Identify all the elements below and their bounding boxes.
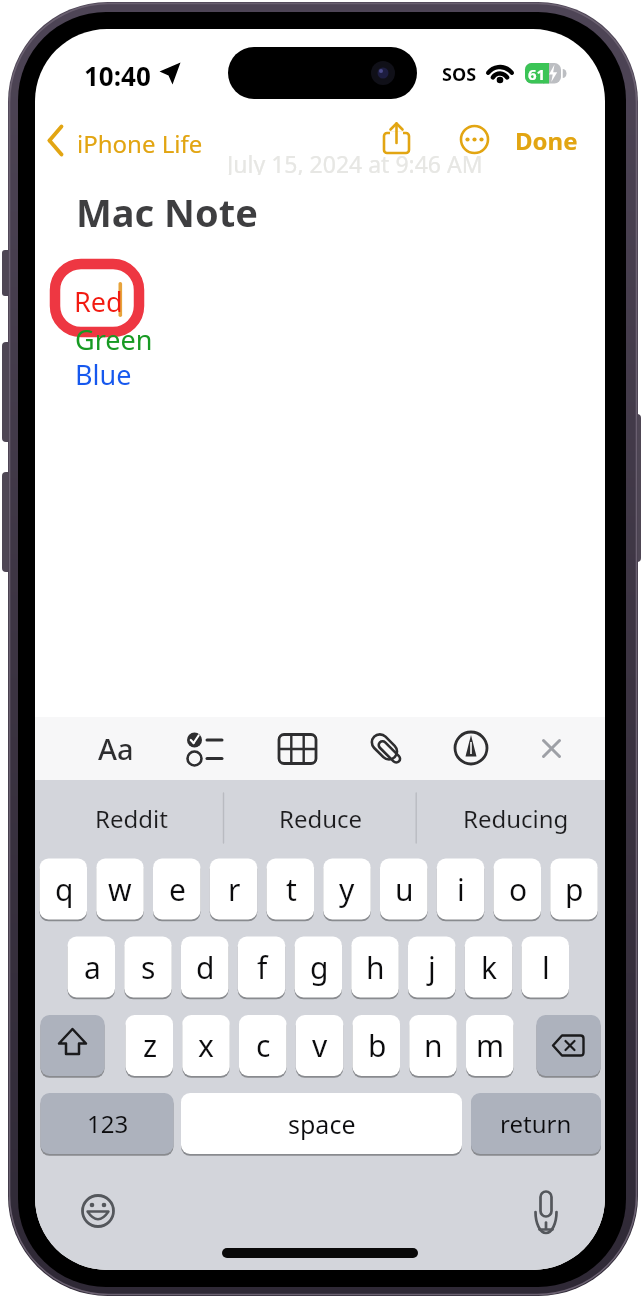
staticText: Aa [98, 729, 134, 768]
staticText: i [457, 869, 465, 910]
button[interactable]: o [494, 859, 542, 920]
staticText: r [228, 869, 241, 910]
staticText: d [196, 947, 215, 988]
staticText: y [339, 869, 355, 910]
staticText: l [542, 947, 550, 988]
staticText: Reduce [279, 802, 363, 835]
button[interactable]: Reddit [60, 795, 202, 841]
button[interactable] [452, 117, 497, 162]
staticText: Green [75, 321, 153, 358]
staticText: p [565, 869, 584, 910]
button[interactable] [530, 726, 573, 771]
button[interactable] [362, 726, 409, 771]
staticText: 10:40 [84, 58, 151, 89]
button[interactable] [448, 726, 494, 771]
staticText: x [198, 1025, 214, 1066]
button[interactable] [172, 726, 222, 771]
button[interactable]: Done [508, 120, 584, 160]
button[interactable]: Aa [88, 728, 144, 768]
staticText: Done [515, 124, 578, 157]
staticText: v [312, 1025, 328, 1066]
staticText: m [476, 1025, 505, 1066]
button[interactable] [526, 1191, 566, 1231]
button[interactable]: space [181, 1093, 462, 1154]
button[interactable]: t [267, 859, 315, 920]
button[interactable]: u [380, 859, 428, 920]
button[interactable]: g [295, 937, 343, 998]
staticText: w [108, 869, 132, 910]
button[interactable]: Reduce [250, 795, 392, 841]
button[interactable]: m [466, 1015, 514, 1076]
button[interactable]: s [124, 937, 172, 998]
staticText: k [481, 947, 498, 988]
staticText: Reddit [95, 802, 168, 835]
staticText: j [428, 947, 436, 988]
staticText: o [509, 869, 528, 910]
staticText: iPhone Life [77, 127, 203, 160]
button[interactable]: q [40, 859, 88, 920]
button[interactable] [374, 116, 419, 161]
staticText: 123 [87, 1107, 129, 1140]
button[interactable]: x [182, 1015, 230, 1076]
button[interactable]: a [68, 937, 116, 998]
button[interactable]: Reducing [445, 795, 587, 841]
button[interactable]: r [210, 859, 258, 920]
staticText: July 15, 2024 at 9:46 AM [227, 148, 483, 175]
button[interactable] [41, 1015, 105, 1076]
button[interactable]: 123 [41, 1093, 174, 1154]
staticText: t [286, 869, 297, 910]
staticText: Red [74, 283, 123, 320]
staticText: n [424, 1025, 443, 1066]
button[interactable]: j [408, 937, 456, 998]
staticText: Reducing [463, 802, 569, 835]
staticText: e [169, 869, 186, 910]
button[interactable]: c [239, 1015, 287, 1076]
staticText: return [500, 1107, 572, 1140]
staticText: SOS [442, 62, 477, 86]
button[interactable]: k [465, 937, 513, 998]
staticText: g [310, 947, 329, 988]
staticText: c [256, 1025, 271, 1066]
button[interactable]: y [323, 859, 371, 920]
staticText: f [257, 947, 268, 988]
staticText: Mac Note [76, 186, 258, 238]
button[interactable]: e [153, 859, 201, 920]
button[interactable]: z [126, 1015, 174, 1076]
button[interactable] [78, 1191, 118, 1231]
button[interactable]: b [353, 1015, 401, 1076]
button[interactable]: return [471, 1093, 601, 1154]
button[interactable]: v [296, 1015, 344, 1076]
staticText: b [368, 1025, 387, 1066]
staticText: z [143, 1025, 158, 1066]
button[interactable] [272, 726, 322, 771]
button[interactable]: i [437, 859, 485, 920]
button[interactable]: h [351, 937, 399, 998]
button[interactable]: l [522, 937, 570, 998]
button[interactable]: n [409, 1015, 457, 1076]
button[interactable]: w [96, 859, 144, 920]
staticText: 61 [528, 64, 546, 84]
button[interactable]: f [238, 937, 286, 998]
button[interactable] [537, 1015, 601, 1076]
button[interactable] [44, 120, 204, 160]
staticText: a [84, 947, 101, 988]
staticText: Blue [75, 356, 132, 393]
staticText: u [395, 869, 414, 910]
button[interactable]: d [181, 937, 229, 998]
button[interactable]: p [550, 859, 598, 920]
staticText: h [366, 947, 385, 988]
staticText: s [141, 947, 156, 988]
staticText: space [288, 1107, 356, 1141]
staticText: q [55, 869, 74, 910]
